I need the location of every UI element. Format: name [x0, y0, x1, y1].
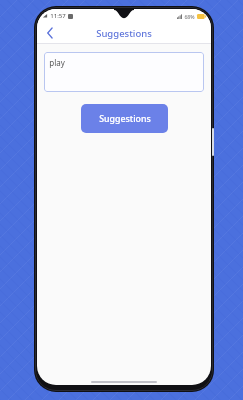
staticText: 11:57: [50, 12, 66, 20]
staticText: Suggestions: [96, 27, 152, 40]
button[interactable]: play: [44, 52, 204, 92]
staticText: Suggestions: [99, 113, 151, 125]
staticText: play: [49, 57, 65, 68]
button[interactable]: Suggestions: [81, 104, 168, 133]
button[interactable]: Back: [43, 26, 57, 40]
staticText: 68%: [184, 13, 195, 20]
